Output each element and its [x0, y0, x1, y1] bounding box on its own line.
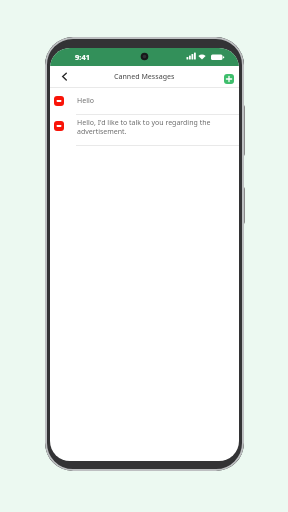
staticText: Hello, I'd like to talk to you regarding… — [77, 118, 213, 136]
staticText: Hello — [77, 96, 94, 106]
staticText: 9:41 — [75, 52, 90, 62]
staticText: Canned Messages — [114, 72, 175, 82]
